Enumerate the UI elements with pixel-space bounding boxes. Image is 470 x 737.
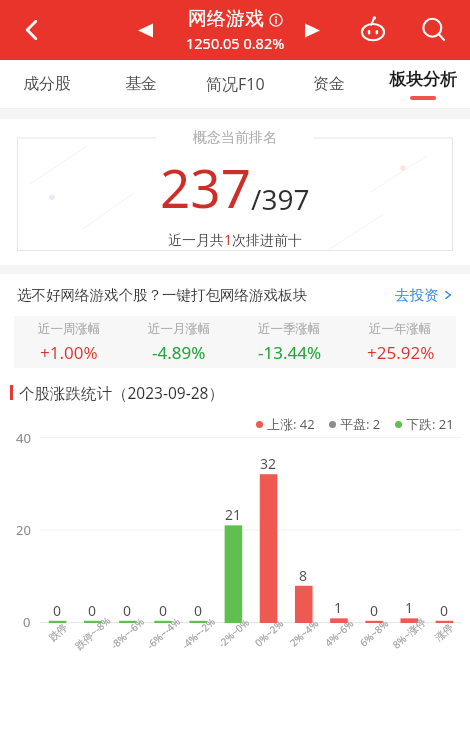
button[interactable]: Previous sector [125, 10, 165, 50]
staticText: 下跌: 21 [406, 415, 454, 433]
staticText: 板块分析 [389, 69, 457, 90]
staticText: 4%~6% [322, 616, 356, 650]
staticText: 1 [334, 598, 343, 617]
staticText: 0 [23, 613, 31, 631]
staticText: 平盘: 2 [340, 415, 381, 433]
staticText: 20 [16, 521, 31, 539]
staticText: 0 [440, 601, 449, 620]
staticText: 近一周涨幅 [38, 321, 101, 337]
button[interactable]: 选不好网络游戏个股？一键打包网络游戏板块 [17, 274, 453, 316]
staticText: 237 [160, 151, 251, 223]
staticText: 0 [370, 601, 379, 620]
staticText: 选不好网络游戏个股？一键打包网络游戏板块 [17, 286, 307, 304]
button[interactable]: Search [410, 6, 458, 54]
staticText: 0 [159, 601, 168, 620]
staticText: 资金 [313, 74, 345, 94]
staticText: 简况F10 [206, 73, 265, 95]
staticText: 21 [225, 505, 242, 524]
staticText: -2%~0% [215, 615, 252, 651]
button[interactable]: Back [6, 4, 58, 56]
button[interactable]: 成分股 [0, 60, 94, 108]
staticText: +25.92% [367, 341, 435, 364]
staticText: 网络游戏 [188, 7, 264, 31]
button[interactable]: 基金 [94, 60, 188, 108]
button[interactable]: 板块分析 [376, 60, 470, 108]
staticText: 32 [260, 454, 277, 473]
staticText: 40 [16, 429, 31, 447]
staticText: -13.44% [258, 341, 322, 364]
staticText: 个股涨跌统计（2023-09-28） [19, 382, 224, 403]
staticText: 0 [88, 601, 97, 620]
staticText: 0 [194, 601, 203, 620]
staticText: 近一季涨幅 [258, 321, 321, 337]
staticText: 8%~涨停 [389, 614, 429, 652]
staticText: 基金 [125, 74, 157, 94]
staticText: -6%~-4% [144, 614, 183, 652]
staticText: 跌停~-8% [72, 613, 113, 653]
staticText: 涨停 [432, 621, 456, 644]
staticText: +1.00% [40, 341, 98, 364]
staticText: 跌停 [46, 621, 70, 644]
staticText: 0%~2% [252, 616, 286, 650]
staticText: 近一月涨幅 [148, 321, 211, 337]
staticText: 1 [405, 598, 414, 617]
staticText: -4%~-2% [179, 614, 218, 652]
staticText: 近一年涨幅 [369, 321, 432, 337]
staticText: 2%~4% [287, 616, 321, 650]
staticText: 去投资 [395, 286, 439, 304]
staticText: 概念当前排名 [193, 129, 277, 147]
staticText: /397 [251, 180, 310, 218]
button[interactable]: 简况F10 [188, 60, 282, 108]
staticText: 近一月共1次排进前十 [168, 230, 303, 249]
staticText: 1250.05 0.82% [186, 33, 285, 53]
staticText: 成分股 [23, 74, 71, 94]
staticText: 8 [299, 566, 308, 585]
button[interactable]: 资金 [282, 60, 376, 108]
staticText: -4.89% [152, 341, 206, 364]
staticText: 6%~8% [357, 616, 391, 650]
button[interactable]: Next sector [292, 10, 332, 50]
staticText: 0 [53, 601, 62, 620]
button[interactable]: AI assistant [350, 7, 396, 53]
staticText: 上涨: 42 [267, 415, 315, 433]
staticText: 0 [123, 601, 132, 620]
staticText: -8%~-6% [108, 614, 147, 652]
